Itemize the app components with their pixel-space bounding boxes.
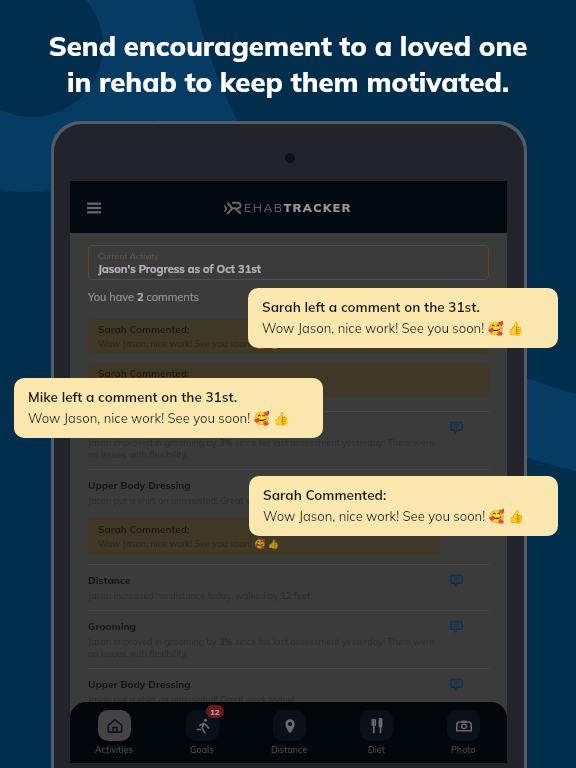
staticText: Jason's Progress as of Oct 31st bbox=[98, 262, 261, 276]
staticText: Sarah Commented: bbox=[98, 323, 190, 336]
staticText: Wow Jason, nice work! See you soon! 🥰 👍 bbox=[263, 508, 525, 524]
staticText: Diet bbox=[368, 744, 385, 755]
staticText: Wow Jason, nice work! See you soon! 🥰 👍 bbox=[98, 538, 279, 549]
staticText: Send encouragement to a loved one in reh… bbox=[0, 28, 576, 99]
staticText: Jason improved in grooming by 3% since h… bbox=[88, 437, 440, 460]
staticText: Grooming bbox=[88, 620, 136, 633]
button[interactable]: Comments bbox=[450, 678, 463, 691]
button[interactable]: Activities bbox=[70, 702, 158, 763]
button[interactable]: Distance bbox=[88, 565, 489, 610]
button[interactable]: Menu bbox=[87, 200, 101, 214]
button[interactable]: Diet bbox=[333, 702, 420, 763]
staticText: 12 bbox=[210, 707, 220, 717]
button[interactable]: Sarah Commented: bbox=[88, 319, 489, 353]
button[interactable]: Mike left a comment on the 31st. bbox=[14, 378, 323, 438]
staticText: Wow Jason, nice work! See you soon! 🥰 👍 bbox=[98, 382, 279, 393]
button[interactable]: Grooming bbox=[88, 611, 489, 668]
button[interactable]: 12 bbox=[158, 702, 246, 763]
button[interactable]: Comments bbox=[450, 620, 463, 633]
staticText: Upper Body Dressing bbox=[88, 479, 191, 492]
staticText: Wow Jason, nice work! See you soon! 🥰 👍 bbox=[28, 410, 290, 426]
staticText: Grooming bbox=[88, 421, 136, 434]
staticText: Wow Jason, nice work! See you soon! 🥰 👍 bbox=[98, 338, 279, 349]
staticText: EHABTRACKER bbox=[244, 200, 352, 215]
staticText: Sarah Commented: bbox=[263, 486, 387, 503]
button[interactable]: Sarah Commented: bbox=[249, 476, 558, 536]
staticText: Activities bbox=[95, 744, 133, 755]
button[interactable]: Photo bbox=[420, 702, 507, 763]
staticText: Wow Jason, nice work! See you soon! 🥰 👍 bbox=[262, 320, 524, 336]
staticText: Sarah Commented: bbox=[98, 523, 190, 536]
staticText: You have 2 comments bbox=[88, 290, 200, 304]
staticText: Photo bbox=[451, 744, 476, 755]
staticText: Mike left a comment on the 31st. bbox=[28, 388, 238, 405]
staticText: Upper Body Dressing bbox=[88, 678, 191, 691]
button[interactable]: Sarah left a comment on the 31st. bbox=[248, 288, 558, 348]
button[interactable]: Distance bbox=[246, 702, 333, 763]
button[interactable]: Sarah Commented: bbox=[88, 363, 489, 397]
button[interactable]: Comments bbox=[450, 574, 463, 587]
button[interactable]: Current Activity bbox=[88, 245, 489, 280]
staticText: Jason improved in grooming by 3% since h… bbox=[88, 636, 440, 659]
button[interactable]: Upper Body Dressing bbox=[88, 470, 489, 564]
button[interactable]: Grooming bbox=[88, 412, 489, 469]
button[interactable]: Upper Body Dressing bbox=[88, 669, 489, 714]
staticText: Jason put a shirt on unassisted! Great w… bbox=[88, 495, 295, 506]
staticText: Sarah Commented: bbox=[98, 367, 190, 380]
staticText: Jason increased his distance today, walk… bbox=[88, 590, 313, 601]
button[interactable]: Comments bbox=[450, 421, 463, 434]
staticText: Jason put a shirt on unassisted! Great w… bbox=[88, 694, 295, 705]
staticText: Goals bbox=[190, 744, 214, 755]
staticText: Current Activity bbox=[98, 250, 160, 261]
staticText: Distance bbox=[88, 574, 131, 587]
staticText: Distance bbox=[271, 744, 308, 755]
staticText: Sarah left a comment on the 31st. bbox=[262, 298, 480, 315]
